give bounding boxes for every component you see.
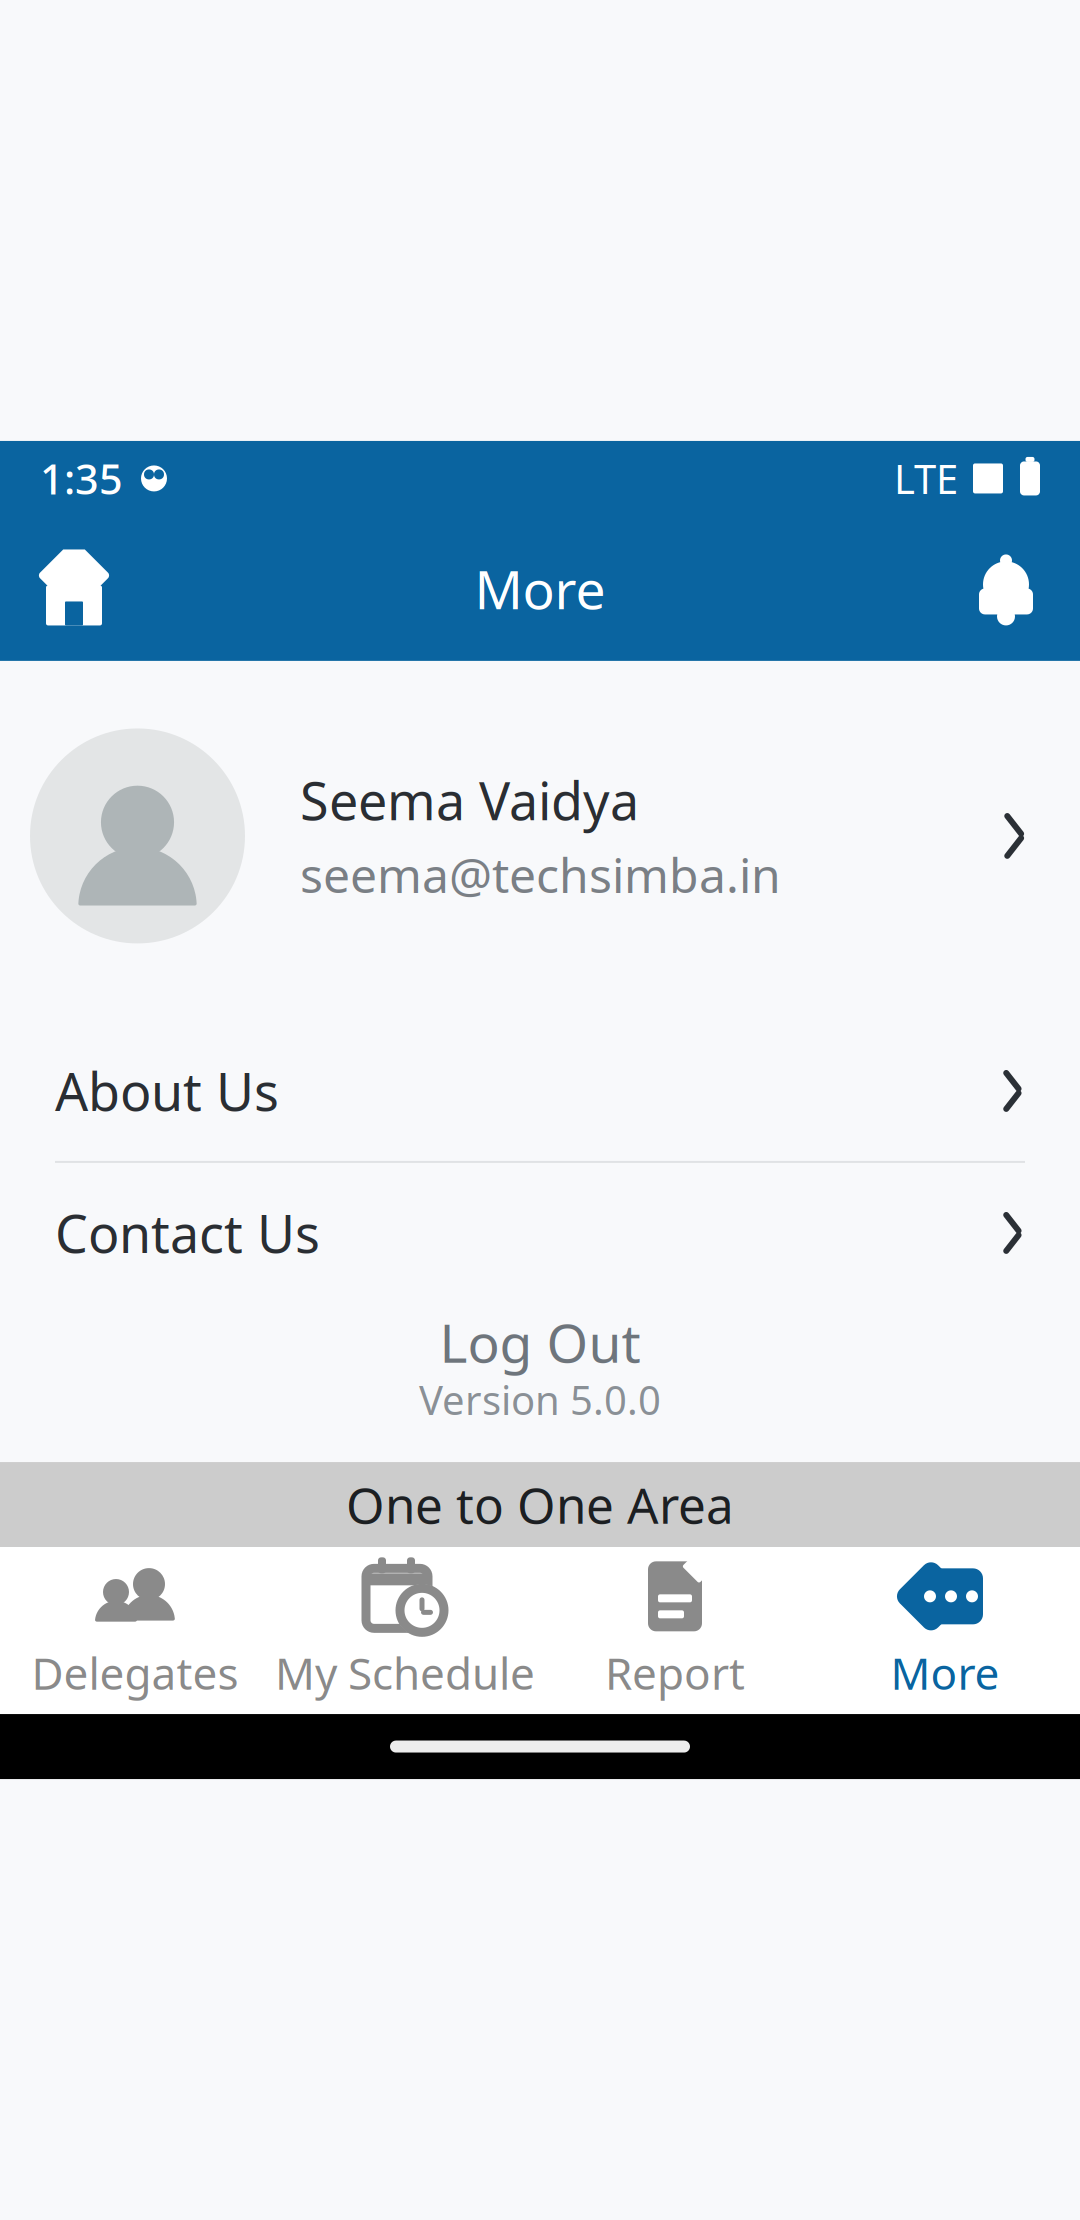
staticText: 1:35 <box>40 451 123 506</box>
button[interactable]: One to One Area <box>0 1462 1080 1547</box>
staticText: Log Out <box>439 1306 640 1377</box>
staticText: Version 5.0.0 <box>419 1373 661 1426</box>
staticText: Delegates <box>31 1643 238 1702</box>
staticText: seema@techsimba.in <box>300 843 781 906</box>
staticText: My Schedule <box>275 1643 535 1702</box>
button[interactable]: More <box>810 1548 1080 1713</box>
staticText: Report <box>605 1643 745 1702</box>
staticText: More <box>890 1643 999 1702</box>
button[interactable]: Report <box>540 1548 810 1713</box>
button[interactable]: Seema Vaidya <box>0 706 1080 966</box>
button[interactable]: Delegates <box>0 1548 270 1713</box>
button[interactable]: Contact Us <box>0 1163 1080 1303</box>
button[interactable]: About Us <box>0 1021 1080 1161</box>
button[interactable]: Home <box>24 533 124 643</box>
staticText: About Us <box>55 1056 279 1125</box>
button[interactable]: Log Out <box>0 1311 1080 1373</box>
staticText: Contact Us <box>55 1198 320 1267</box>
staticText: More <box>474 553 605 624</box>
staticText: One to One Area <box>346 1472 734 1537</box>
staticText: Seema Vaidya <box>300 765 639 835</box>
staticText: LTE <box>894 452 958 505</box>
button[interactable]: My Schedule <box>270 1548 540 1713</box>
button[interactable]: Notifications <box>956 533 1056 643</box>
